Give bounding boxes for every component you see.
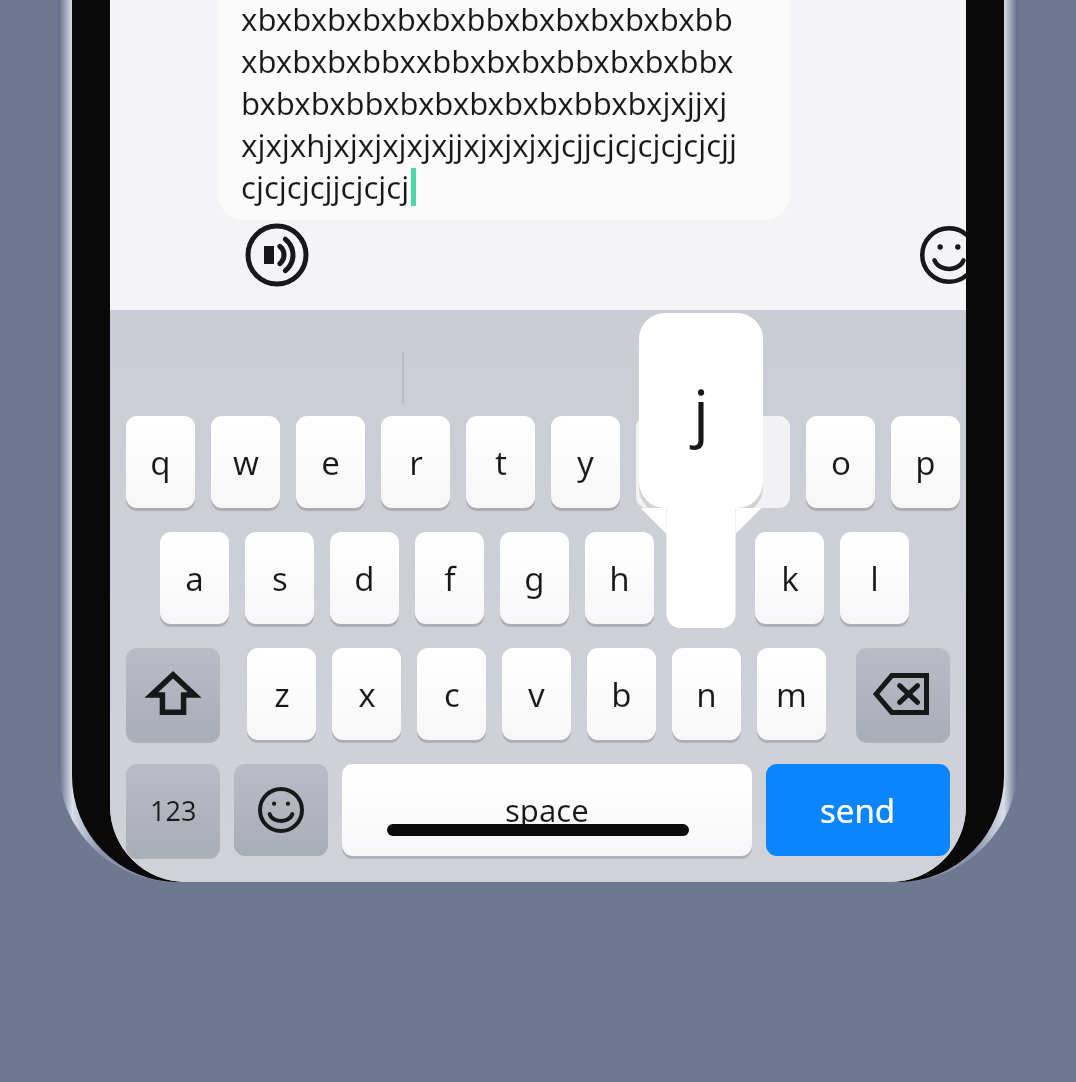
staticText: l xyxy=(870,556,879,601)
button[interactable]: f xyxy=(415,532,484,624)
button[interactable]: s xyxy=(245,532,314,624)
button[interactable]: Audio message xyxy=(244,222,310,288)
button[interactable]: t xyxy=(466,416,535,508)
staticText: y xyxy=(577,440,594,485)
button[interactable]: y xyxy=(551,416,620,508)
button[interactable]: v xyxy=(502,648,571,740)
button[interactable]: Emoji xyxy=(916,222,966,288)
staticText: t xyxy=(495,440,507,485)
staticText: xbxbxbxbbxxbbxbxbxbbxbxbxbbx xyxy=(241,40,734,82)
staticText: k xyxy=(781,556,799,601)
button[interactable]: m xyxy=(757,648,826,740)
button[interactable]: e xyxy=(296,416,365,508)
staticText: o xyxy=(831,440,851,485)
button[interactable]: h xyxy=(585,532,654,624)
staticText: xjxjxhjxjxjxjxjxjjxjxjxjxjcjjcjcjcjcjcjc… xyxy=(241,124,738,166)
staticText: h xyxy=(609,556,630,601)
button[interactable]: z xyxy=(247,648,316,740)
button[interactable]: n xyxy=(672,648,741,740)
staticText: d xyxy=(354,556,375,601)
staticText: z xyxy=(274,672,290,717)
button[interactable] xyxy=(721,416,790,508)
staticText: q xyxy=(150,440,171,485)
staticText: bxbxbxbbxbxbxbxbxbxbbxbxjxjjxj xyxy=(241,82,728,124)
button[interactable]: o xyxy=(806,416,875,508)
staticText: e xyxy=(321,440,340,485)
staticText: w xyxy=(233,440,259,485)
staticText: a xyxy=(185,556,204,601)
staticText: xbxbxbxbxbxbxbbxbxbxbxbxbxbb xyxy=(241,0,733,40)
button[interactable]: x xyxy=(332,648,401,740)
button[interactable]: q xyxy=(126,416,195,508)
button[interactable]: Emoji keyboard xyxy=(234,764,328,856)
staticText: m xyxy=(776,672,807,717)
staticText: x xyxy=(358,672,376,717)
staticText: j xyxy=(693,369,709,453)
staticText: p xyxy=(915,440,936,485)
button[interactable]: send xyxy=(766,764,950,856)
staticText: r xyxy=(409,440,423,485)
button[interactable]: a xyxy=(160,532,229,624)
staticText: n xyxy=(696,672,717,717)
staticText: s xyxy=(272,556,288,601)
button[interactable]: 123 xyxy=(126,764,220,856)
staticText: space xyxy=(505,789,589,831)
staticText: 123 xyxy=(150,792,197,829)
button[interactable]: Shift xyxy=(126,648,220,740)
button[interactable]: b xyxy=(587,648,656,740)
staticText: b xyxy=(611,672,632,717)
button[interactable] xyxy=(218,0,790,220)
button[interactable]: j xyxy=(639,313,763,508)
staticText: v xyxy=(528,672,545,717)
staticText: cjcjcjcjjcjcjcj xyxy=(241,166,410,208)
button[interactable]: c xyxy=(417,648,486,740)
button[interactable]: l xyxy=(840,532,909,624)
staticText: f xyxy=(444,556,456,601)
button[interactable] xyxy=(636,416,705,508)
staticText: g xyxy=(524,556,545,601)
staticText: send xyxy=(820,788,896,833)
button[interactable]: d xyxy=(330,532,399,624)
button[interactable]: k xyxy=(755,532,824,624)
button[interactable]: w xyxy=(211,416,280,508)
button[interactable]: r xyxy=(381,416,450,508)
button[interactable]: p xyxy=(891,416,960,508)
staticText: c xyxy=(444,672,460,717)
button[interactable]: g xyxy=(500,532,569,624)
button[interactable]: Backspace xyxy=(856,648,950,740)
button[interactable]: space xyxy=(342,764,752,856)
